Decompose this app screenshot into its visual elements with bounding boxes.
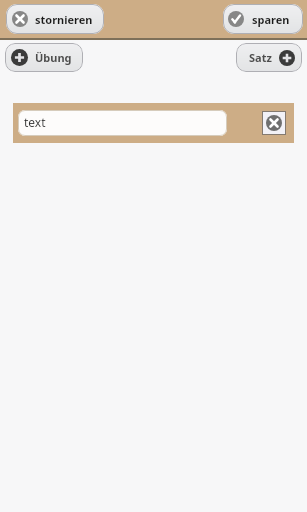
- button[interactable]: Clear text: [262, 111, 286, 135]
- staticText: Satz: [249, 50, 272, 65]
- button[interactable]: Satz: [236, 43, 302, 72]
- button[interactable]: Übung: [5, 43, 83, 72]
- button[interactable]: text: [18, 110, 227, 136]
- staticText: stornieren: [35, 12, 93, 27]
- button[interactable]: stornieren: [6, 4, 104, 34]
- staticText: Übung: [35, 50, 72, 65]
- staticText: sparen: [252, 12, 290, 27]
- staticText: text: [24, 114, 46, 130]
- button[interactable]: sparen: [223, 4, 303, 34]
